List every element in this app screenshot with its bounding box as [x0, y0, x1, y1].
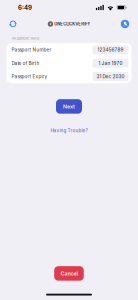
- staticText: 1 Jan 1970: [98, 60, 122, 66]
- staticText: 123456789: [97, 47, 123, 53]
- button[interactable]: Cancel: [54, 266, 84, 281]
- button[interactable]: Profile: [116, 16, 134, 32]
- staticText: Passport Expiry: [11, 74, 47, 79]
- button[interactable]: Next: [56, 99, 82, 114]
- staticText: Date of Birth: [11, 60, 39, 66]
- staticText: Next: [63, 103, 75, 110]
- staticText: Passport Number: [11, 47, 51, 53]
- staticText: PASSPORT INFO: [11, 36, 39, 41]
- button[interactable]: Having Trouble?: [50, 114, 87, 135]
- button[interactable]: Refresh: [4, 16, 22, 32]
- staticText: ONECLICKVERIFY: [54, 21, 90, 26]
- staticText: Having Trouble?: [50, 128, 87, 133]
- staticText: 31 Dec 2030: [96, 74, 124, 79]
- staticText: Cancel: [60, 270, 77, 277]
- staticText: 6:49: [18, 4, 32, 11]
